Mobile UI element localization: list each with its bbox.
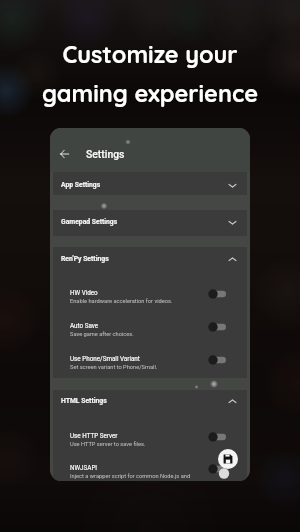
staticText: Use Phone/Small Variant — [70, 355, 140, 362]
button[interactable]: Back — [55, 144, 74, 163]
button[interactable]: Ren'Py Settings — [53, 247, 247, 278]
button[interactable]: Auto Save — [53, 311, 247, 344]
button[interactable]: Gamepad Settings — [53, 210, 247, 236]
button[interactable]: App Settings — [53, 172, 247, 195]
staticText: HTML Settings — [61, 397, 107, 405]
button[interactable]: NWJSAPI — [53, 453, 247, 481]
staticText: Auto Save — [70, 322, 99, 329]
button[interactable]: Use HTTP Server — [53, 421, 247, 454]
staticText: App Settings — [61, 181, 101, 189]
button[interactable]: Toggle HW Video — [208, 289, 226, 299]
staticText: Inject a wrapper script for common Node.… — [70, 473, 191, 481]
button[interactable]: Toggle Use Phone/Small Variant — [208, 355, 226, 365]
staticText: Settings — [86, 148, 125, 160]
button[interactable]: Save — [218, 449, 238, 469]
staticText: Ren'Py Settings — [61, 255, 109, 263]
staticText: Enable hardware acceleration for videos. — [70, 298, 173, 305]
button[interactable]: HTML Settings — [53, 390, 247, 421]
button[interactable]: Use Phone/Small Variant — [53, 344, 247, 377]
staticText: NWJSAPI — [70, 464, 98, 471]
button[interactable]: Toggle Use HTTP Server — [208, 432, 226, 442]
staticText: Use HTTP server to save files. — [70, 441, 146, 448]
staticText: Gamepad Settings — [61, 218, 118, 226]
button[interactable]: Toggle Auto Save — [208, 322, 226, 332]
button[interactable]: Toggle NWJSAPI — [208, 464, 226, 474]
staticText: Save game after choices. — [70, 331, 134, 338]
staticText: Set screen variant to Phone/Small. — [70, 364, 158, 371]
staticText: Customize your gaming experience — [0, 39, 300, 107]
staticText: Use HTTP Server — [70, 432, 118, 439]
button[interactable]: HW Video — [53, 278, 247, 311]
staticText: HW Video — [70, 289, 98, 296]
